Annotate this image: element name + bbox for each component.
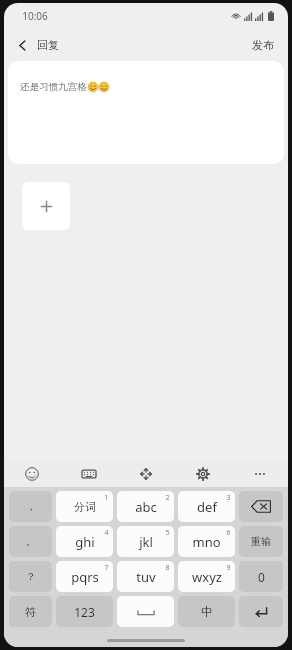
button[interactable]: Backspace	[239, 491, 283, 522]
button[interactable]: Enter	[239, 596, 283, 627]
staticText: 重输	[251, 535, 271, 548]
staticText: ，	[26, 500, 36, 513]
button[interactable]: def	[178, 491, 235, 522]
staticText: 2	[165, 493, 170, 503]
other: Back	[16, 39, 29, 52]
staticText: 还是习惯九宫格	[20, 81, 87, 93]
staticText: 7	[104, 563, 109, 573]
button[interactable]: tuv	[117, 561, 174, 592]
button[interactable]: Move cursor	[117, 460, 174, 487]
staticText: wxyz	[192, 568, 222, 586]
staticText: 9	[226, 563, 231, 573]
button[interactable]: Back	[4, 29, 67, 61]
staticText: mno	[192, 533, 221, 551]
staticText: tuv	[136, 568, 156, 586]
button[interactable]: Settings	[174, 460, 231, 487]
button[interactable]: abc	[117, 491, 174, 522]
button[interactable]: 0	[239, 561, 283, 592]
button[interactable]: jkl	[117, 526, 174, 557]
button[interactable]: mno	[178, 526, 235, 557]
button[interactable]: 还是习惯九宫格	[8, 61, 284, 164]
staticText: 。	[26, 535, 36, 548]
button[interactable]: Keyboard layout	[60, 460, 117, 487]
staticText: 5	[165, 528, 170, 538]
staticText: abc	[135, 498, 157, 516]
staticText: def	[197, 498, 217, 516]
staticText: ghi	[75, 533, 95, 551]
button[interactable]: ？	[9, 561, 52, 592]
staticText: 1	[104, 493, 109, 503]
button[interactable]: 。	[9, 526, 52, 557]
staticText: 8	[165, 563, 170, 573]
button[interactable]: More options	[231, 460, 288, 487]
button[interactable]: ghi	[56, 526, 113, 557]
staticText: 符	[25, 605, 36, 619]
button[interactable]: wxyz	[178, 561, 235, 592]
button[interactable]: Add image	[22, 182, 70, 230]
button[interactable]: 中	[178, 596, 235, 627]
staticText: 发布	[252, 38, 274, 52]
staticText: 中	[201, 604, 213, 619]
button[interactable]: Emoji	[4, 460, 60, 487]
button[interactable]: ，	[9, 491, 52, 522]
staticText: 123	[74, 604, 95, 620]
staticText: 3	[226, 493, 231, 503]
button[interactable]: 重输	[239, 526, 283, 557]
button[interactable]: pqrs	[56, 561, 113, 592]
button[interactable]: 发布	[238, 29, 288, 61]
staticText: jkl	[139, 533, 153, 551]
button[interactable]: 123	[56, 596, 113, 627]
staticText: pqrs	[71, 568, 99, 586]
staticText: 4	[104, 528, 109, 538]
staticText: ？	[26, 570, 36, 583]
staticText: 0	[258, 569, 265, 585]
button[interactable]: 分词	[56, 491, 113, 522]
staticText: 6	[226, 528, 231, 538]
staticText: 分词	[74, 500, 96, 514]
staticText: 10:06	[22, 9, 48, 23]
button[interactable]: 符	[9, 596, 52, 627]
staticText: 回复	[37, 38, 59, 52]
button[interactable]: Space	[117, 596, 174, 627]
